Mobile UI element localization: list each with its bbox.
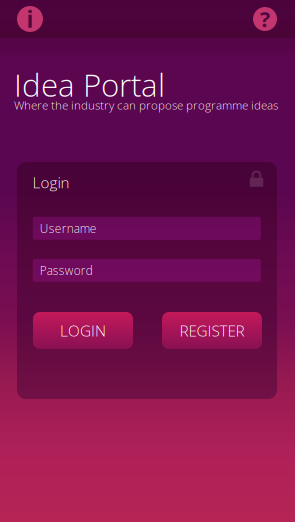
button[interactable]: REGISTER: [162, 312, 262, 349]
button[interactable]: Help: [243, 0, 287, 38]
button[interactable]: Information: [8, 0, 52, 38]
staticText: REGISTER: [179, 320, 244, 341]
staticText: ?: [260, 4, 270, 34]
staticText: Where the industry can propose programme…: [14, 97, 278, 113]
staticText: LOGIN: [60, 320, 106, 341]
staticText: Login: [33, 172, 70, 193]
staticText: Username: [40, 220, 97, 236]
staticText: Idea Portal: [14, 63, 165, 106]
staticText: i: [26, 4, 33, 34]
button[interactable]: LOGIN: [33, 312, 133, 349]
staticText: Password: [40, 262, 93, 278]
